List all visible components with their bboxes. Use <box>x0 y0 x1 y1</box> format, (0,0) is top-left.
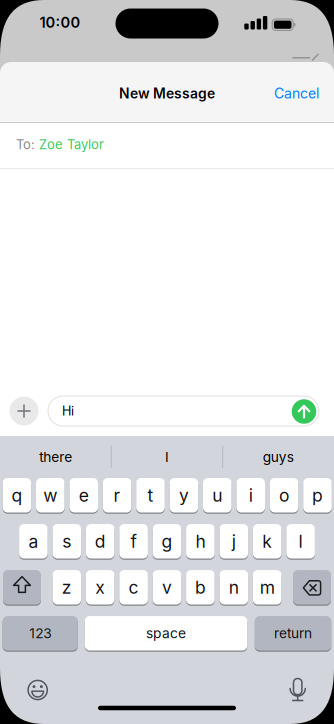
button[interactable]: z <box>52 569 81 605</box>
button[interactable]: j <box>219 523 248 559</box>
staticText: k <box>262 531 272 552</box>
staticText: To: <box>16 137 35 152</box>
staticText: p <box>312 485 323 506</box>
button[interactable]: d <box>86 523 114 559</box>
staticText: guys <box>263 449 294 465</box>
button[interactable] <box>286 677 309 701</box>
staticText: there <box>39 449 72 465</box>
staticText: I <box>165 449 169 465</box>
staticText: z <box>62 577 72 598</box>
staticText: w <box>43 485 57 506</box>
button[interactable]: u <box>203 477 232 514</box>
button[interactable] <box>3 569 41 605</box>
button[interactable]: f <box>119 523 148 559</box>
button[interactable]: m <box>253 569 281 605</box>
button[interactable]: n <box>219 569 248 605</box>
staticText: Hi <box>62 403 74 419</box>
staticText: d <box>95 531 106 552</box>
button[interactable]: e <box>69 477 98 514</box>
staticText: Cancel <box>274 85 319 102</box>
staticText: c <box>129 577 139 598</box>
button[interactable]: r <box>103 477 131 514</box>
staticText: u <box>212 485 222 506</box>
staticText: i <box>249 485 253 506</box>
staticText: y <box>179 485 189 506</box>
button[interactable]: h <box>186 523 215 559</box>
button[interactable]: l <box>286 523 315 559</box>
button[interactable]: i <box>236 477 265 514</box>
button[interactable]: a <box>19 523 48 559</box>
staticText: h <box>195 531 205 552</box>
button[interactable]: guys <box>228 442 328 472</box>
button[interactable] <box>48 396 319 426</box>
button[interactable]: s <box>52 523 81 559</box>
button[interactable]: v <box>153 569 181 605</box>
staticText: v <box>162 577 172 598</box>
button[interactable]: x <box>86 569 114 605</box>
staticText: b <box>195 577 206 598</box>
staticText: 10:00 <box>39 14 80 31</box>
button[interactable]: b <box>186 569 215 605</box>
staticText: n <box>229 577 239 598</box>
button[interactable]: space <box>85 615 247 651</box>
button[interactable]: q <box>3 477 31 514</box>
button[interactable]: p <box>303 477 332 514</box>
button[interactable]: o <box>270 477 298 514</box>
staticText: r <box>114 485 121 506</box>
staticText: f <box>131 531 137 552</box>
staticText: s <box>62 531 71 552</box>
staticText: New Message <box>119 85 215 102</box>
staticText: 123 <box>29 625 51 642</box>
button[interactable]: Cancel <box>274 85 319 102</box>
button[interactable]: y <box>170 477 198 514</box>
staticText: t <box>147 485 153 506</box>
button[interactable]: t <box>136 477 165 514</box>
button[interactable]: there <box>6 442 106 472</box>
button[interactable] <box>9 396 38 425</box>
staticText: a <box>28 531 38 552</box>
staticText: space <box>146 625 186 642</box>
staticText: return <box>274 625 312 642</box>
button[interactable]: g <box>153 523 181 559</box>
button[interactable]: return <box>255 615 331 651</box>
button[interactable]: w <box>36 477 65 514</box>
button[interactable]: k <box>253 523 281 559</box>
staticText: e <box>79 485 89 506</box>
button[interactable]: c <box>119 569 148 605</box>
staticText: o <box>279 485 289 506</box>
staticText: Zoe Taylor <box>39 137 104 152</box>
staticText: l <box>299 531 303 552</box>
staticText: m <box>260 577 275 598</box>
staticText: j <box>232 531 236 552</box>
staticText: g <box>161 531 172 552</box>
button[interactable]: I <box>117 442 217 472</box>
button[interactable]: To: <box>16 122 334 167</box>
staticText: q <box>11 485 22 506</box>
button[interactable] <box>293 569 331 605</box>
staticText: x <box>95 577 105 598</box>
button[interactable]: 123 <box>3 615 78 651</box>
button[interactable] <box>27 679 49 701</box>
button[interactable] <box>292 399 316 424</box>
